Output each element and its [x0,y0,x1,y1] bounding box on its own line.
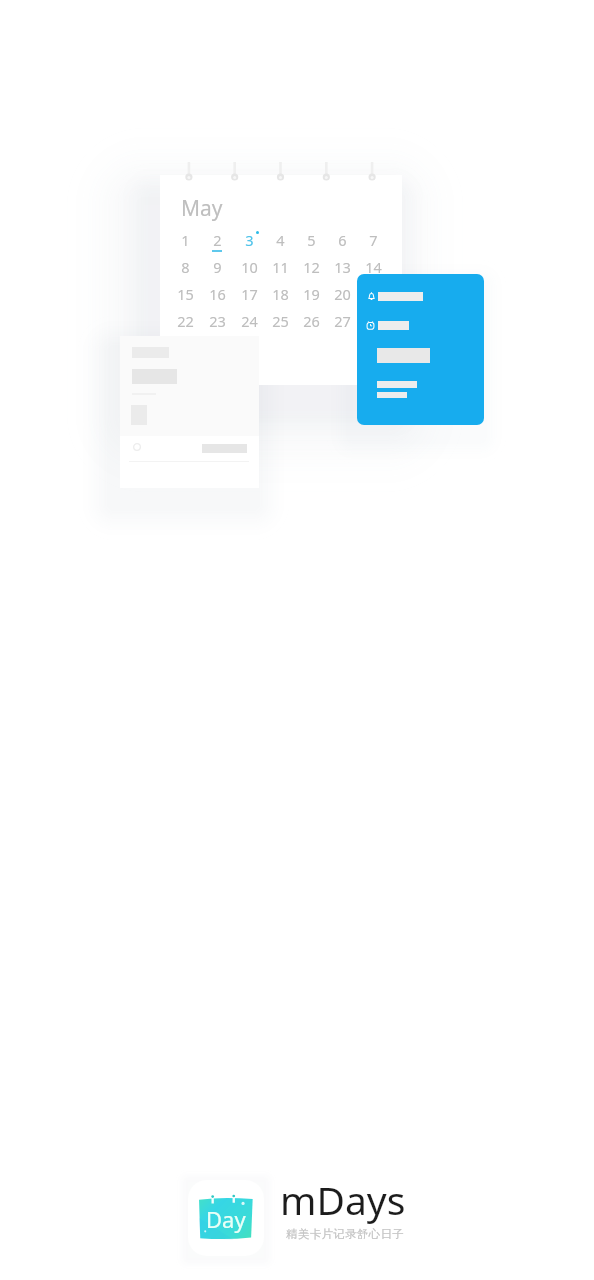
staticText: 9 [213,257,222,277]
staticText: 24 [241,311,258,331]
staticText: 28 [365,311,382,331]
staticText: 27 [334,311,351,331]
button[interactable]: Reminder card [357,274,484,425]
staticText: 23 [209,311,226,331]
button[interactable]: May calendar [160,175,402,385]
staticText: mDays [280,1173,406,1226]
staticText: 11 [272,257,289,277]
staticText: 7 [369,230,378,250]
staticText: 精美卡片记录舒心日子 [286,1227,404,1241]
staticText: 19 [303,284,320,304]
staticText: 5 [307,230,316,250]
staticText: 2 [213,230,222,250]
staticText: 17 [241,284,258,304]
staticText: 8 [181,257,190,277]
staticText: May [181,194,223,223]
button[interactable]: mDays app icon [188,1180,264,1256]
staticText: 4 [276,230,285,250]
staticText: 22 [177,311,194,331]
staticText: 10 [241,257,258,277]
staticText: Day [206,1204,246,1234]
staticText: 26 [303,311,320,331]
staticText: 25 [272,311,289,331]
staticText: 13 [334,257,351,277]
staticText: 18 [272,284,289,304]
button[interactable]: Note card [120,336,259,488]
staticText: 21 [365,284,382,304]
staticText: 16 [209,284,226,304]
staticText: 12 [303,257,320,277]
staticText: 20 [334,284,351,304]
staticText: 1 [181,230,190,250]
staticText: 14 [365,257,382,277]
staticText: 6 [338,230,347,250]
staticText: 3 [245,230,254,250]
staticText: 15 [177,284,194,304]
